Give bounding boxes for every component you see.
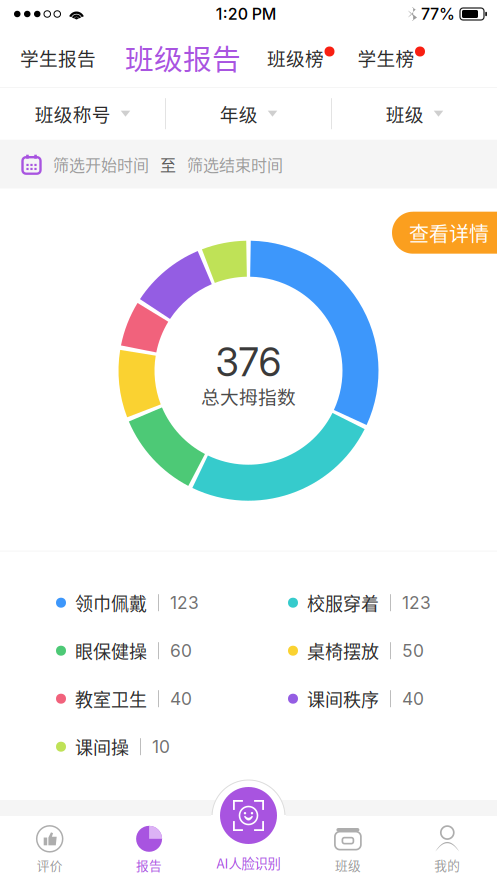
staticText: 至 — [160, 153, 176, 176]
button[interactable]: 眼保健操 — [56, 627, 288, 675]
button[interactable]: 报告 — [99, 816, 199, 883]
staticText: 10 — [152, 736, 170, 757]
staticText: 班级称号 — [35, 100, 111, 127]
button[interactable]: 班级称号 — [0, 88, 165, 140]
button[interactable]: 班级榜 — [255, 32, 346, 82]
staticText: 123 — [402, 592, 431, 613]
button[interactable]: 课间操 — [56, 723, 288, 771]
staticText: 50 — [402, 640, 424, 661]
staticText: 报告 — [136, 856, 162, 874]
staticText: 眼保健操 — [75, 638, 147, 664]
staticText: 课间秩序 — [307, 686, 379, 712]
button[interactable]: 课间秩序 — [288, 675, 497, 723]
staticText: 77% — [421, 4, 455, 24]
button[interactable]: 查看详情 — [392, 212, 497, 254]
staticText: 60 — [170, 640, 192, 661]
staticText: 1:20 PM — [216, 4, 277, 24]
staticText: 筛选开始时间 — [53, 153, 149, 176]
staticText: 班级报告 — [125, 37, 241, 78]
staticText: 桌椅摆放 — [307, 638, 379, 664]
staticText: 123 — [170, 592, 199, 613]
staticText: 班级 — [386, 100, 424, 127]
staticText: 校服穿着 — [307, 590, 379, 616]
button[interactable]: 领巾佩戴 — [56, 579, 288, 627]
button[interactable]: 我的 — [398, 816, 497, 883]
staticText: 评价 — [37, 856, 63, 874]
button[interactable]: AI人脸识别 — [193, 787, 303, 872]
button[interactable]: 筛选开始时间 — [0, 140, 497, 189]
staticText: 我的 — [434, 856, 460, 874]
button[interactable]: 教室卫生 — [56, 675, 288, 723]
staticText: 376 — [215, 339, 281, 386]
staticText: 学生榜 — [357, 44, 414, 71]
staticText: AI人脸识别 — [216, 853, 280, 872]
staticText: 筛选结束时间 — [187, 153, 283, 176]
staticText: 教室卫生 — [75, 686, 147, 712]
staticText: 查看详情 — [409, 218, 489, 247]
button[interactable]: 校服穿着 — [288, 579, 497, 627]
staticText: 班级 — [335, 856, 361, 874]
button[interactable]: 年级 — [166, 88, 331, 140]
staticText: 40 — [402, 688, 424, 709]
button[interactable]: 评价 — [0, 816, 99, 883]
button[interactable]: 学生报告 — [14, 32, 111, 82]
staticText: 总大拇指数 — [201, 383, 296, 410]
staticText: 年级 — [220, 100, 258, 127]
staticText: 课间操 — [75, 734, 129, 760]
staticText: 40 — [170, 688, 192, 709]
button[interactable]: 班级 — [332, 88, 497, 140]
button[interactable]: 班级报告 — [111, 32, 255, 82]
button[interactable]: 班级 — [298, 816, 398, 883]
staticText: 领巾佩戴 — [75, 590, 147, 616]
staticText: 班级榜 — [267, 44, 324, 71]
button[interactable]: 学生榜 — [346, 32, 436, 82]
button[interactable]: 桌椅摆放 — [288, 627, 497, 675]
staticText: 学生报告 — [20, 44, 96, 71]
